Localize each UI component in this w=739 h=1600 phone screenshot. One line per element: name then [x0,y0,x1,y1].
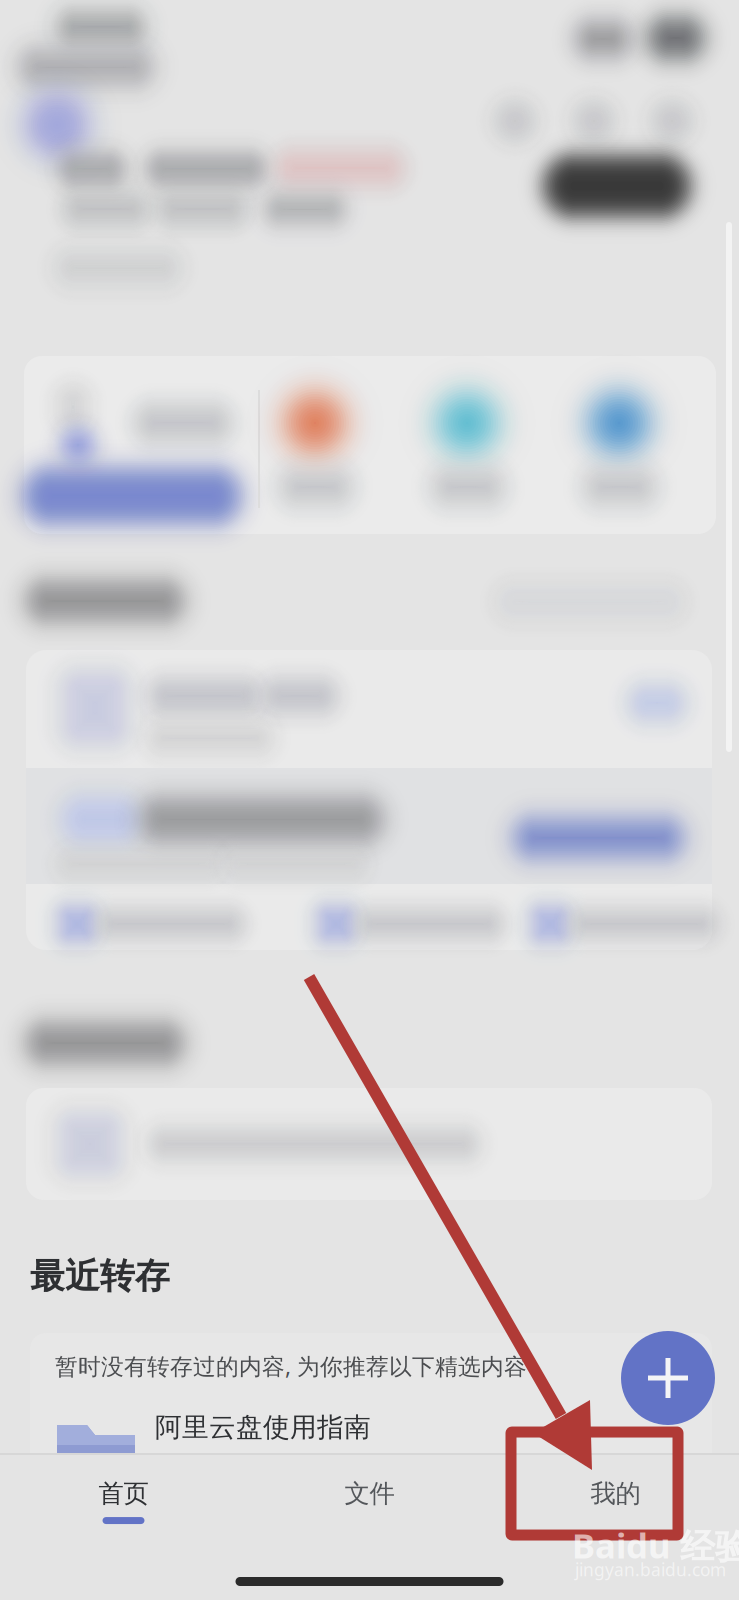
staticText: 最近转存 [30,1255,170,1298]
staticText: 文件 [344,1478,394,1509]
staticText: jingyan.baidu.com [575,1558,726,1581]
button[interactable]: 文件 [246,1455,492,1547]
staticText: Baidu 经验 [572,1522,739,1568]
staticText: 暂时没有转存过的内容, 为你推荐以下精选内容 [55,1351,527,1381]
staticText: 首页 [98,1478,148,1509]
staticText: 我的 [590,1478,640,1509]
button[interactable]: 首页 [0,1455,246,1547]
button[interactable]: 新建 [621,1331,715,1425]
button[interactable]: 我的 [492,1455,738,1547]
staticText: 阿里云盘使用指南 [155,1411,371,1444]
